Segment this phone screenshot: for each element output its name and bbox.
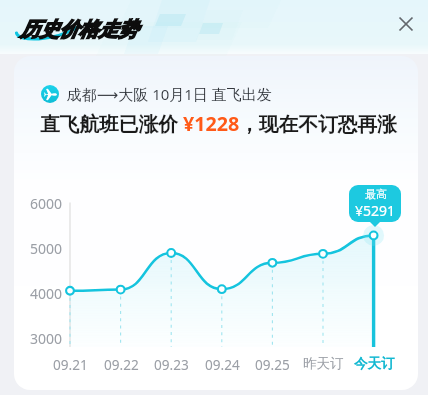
staticText: 09.21: [53, 355, 88, 374]
button[interactable]: 09.22: [95, 355, 147, 374]
staticText: 最高: [365, 187, 387, 201]
button[interactable]: 09.23: [145, 355, 197, 374]
staticText: 昨天订: [303, 355, 344, 372]
staticText: 历史价格走势: [20, 17, 138, 42]
staticText: 直飞航班已涨价 ¥1228，现在不订恐再涨: [40, 110, 397, 137]
button[interactable]: Close: [392, 10, 420, 38]
button[interactable]: 09.24: [196, 355, 248, 374]
button[interactable]: 昨天订: [297, 355, 349, 372]
staticText: 09.23: [154, 355, 189, 374]
staticText: 09.22: [104, 355, 139, 374]
staticText: 历史价格走势: [20, 17, 138, 42]
staticText: 成都⟶大阪 10月1日 直飞出发: [59, 84, 272, 104]
staticText: 6000: [30, 194, 63, 213]
staticText: 3000: [30, 329, 63, 348]
button[interactable]: 09.21: [44, 355, 96, 374]
button[interactable]: 09.25: [246, 355, 298, 374]
staticText: 5000: [30, 239, 63, 258]
staticText: ¥5291: [355, 201, 396, 220]
staticText: 09.25: [255, 355, 290, 374]
button[interactable]: 成都⟶大阪 10月1日 直飞出发: [41, 84, 272, 104]
staticText: 今天订: [354, 355, 395, 372]
button[interactable]: 今天订: [348, 355, 400, 372]
staticText: 09.24: [205, 355, 240, 374]
staticText: 4000: [30, 284, 63, 303]
